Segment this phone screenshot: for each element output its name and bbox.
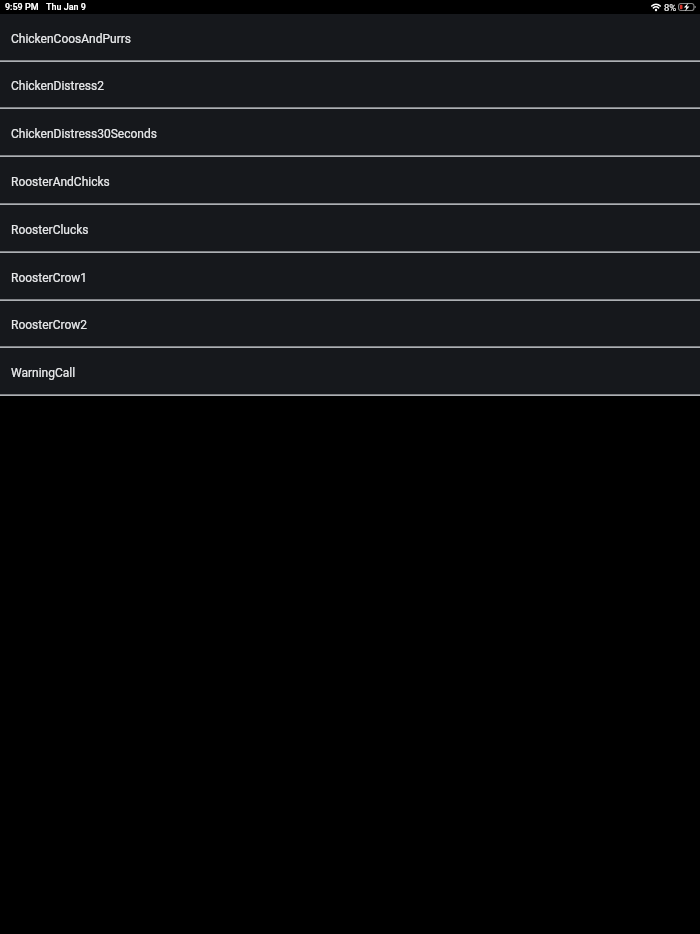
staticText: RoosterCrow2 (11, 318, 87, 332)
staticText: ChickenDistress2 (11, 79, 104, 93)
button[interactable]: WarningCall (0, 348, 700, 396)
staticText: RoosterClucks (11, 223, 89, 237)
button[interactable]: ChickenDistress30Seconds (0, 109, 700, 157)
staticText: RoosterCrow1 (11, 271, 87, 285)
staticText: Thu Jan 9 (46, 2, 86, 13)
button[interactable]: ChickenDistress2 (0, 62, 700, 109)
staticText: ChickenCoosAndPurrs (11, 32, 131, 46)
staticText: ChickenDistress30Seconds (11, 127, 157, 141)
button[interactable]: RoosterClucks (0, 205, 700, 253)
button[interactable]: ChickenCoosAndPurrs (0, 14, 700, 62)
button[interactable]: RoosterCrow1 (0, 253, 700, 301)
other: Battery 8 percent, charging (678, 3, 696, 11)
other: Wi-Fi signal (651, 3, 661, 11)
staticText: WarningCall (11, 366, 76, 380)
staticText: 8% (664, 2, 677, 13)
button[interactable]: RoosterCrow2 (0, 301, 700, 348)
staticText: 9:59 PM (5, 2, 39, 13)
button[interactable]: RoosterAndChicks (0, 157, 700, 205)
staticText: RoosterAndChicks (11, 175, 110, 189)
